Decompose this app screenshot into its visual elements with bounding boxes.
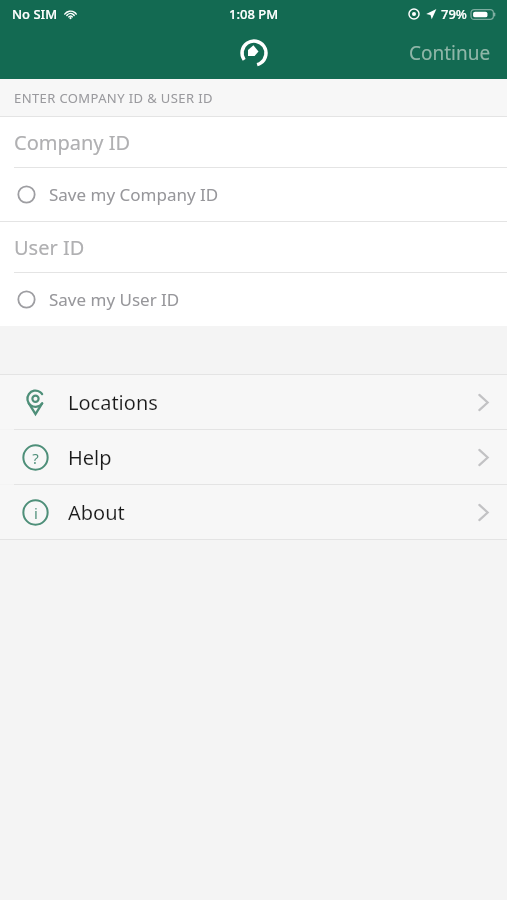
staticText: Locations <box>68 389 478 416</box>
staticText: Company ID <box>14 129 131 156</box>
staticText: ? <box>32 448 39 468</box>
staticText: Save my Company ID <box>49 183 219 206</box>
button[interactable]: Save my User ID <box>0 273 507 326</box>
staticText: User ID <box>14 234 85 261</box>
button[interactable]: ? <box>0 430 507 484</box>
staticText: ENTER COMPANY ID & USER ID <box>14 89 213 107</box>
button[interactable]: Continue <box>393 32 507 74</box>
staticText: Save my User ID <box>49 288 180 311</box>
staticText: i <box>34 503 38 523</box>
staticText: 1:08 PM <box>229 5 279 23</box>
staticText: 79% <box>441 5 467 23</box>
other: App logo <box>239 38 269 68</box>
button[interactable]: Locations <box>0 375 507 429</box>
button[interactable]: User ID <box>0 222 507 272</box>
button[interactable]: Company ID <box>0 117 507 167</box>
staticText: About <box>68 499 478 526</box>
staticText: No SIM <box>12 5 58 23</box>
staticText: Help <box>68 444 478 471</box>
button[interactable]: i <box>0 485 507 539</box>
button[interactable]: Save my Company ID <box>0 168 507 221</box>
staticText: Continue <box>409 40 491 66</box>
